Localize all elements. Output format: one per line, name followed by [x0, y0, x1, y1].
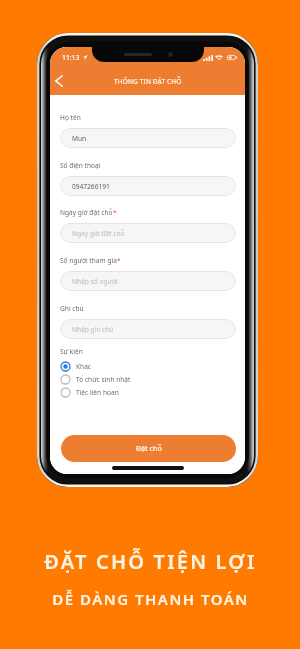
button[interactable]: Nhập số người: [60, 271, 236, 291]
staticText: Số điện thoại: [60, 161, 101, 170]
staticText: Số người tham gia: [60, 256, 117, 265]
staticText: THÔNG TIN ĐẶT CHỖ: [114, 77, 182, 86]
staticText: ĐẶT CHỖ TIỆN LỢI: [44, 548, 257, 575]
button[interactable]: Đặt chỗ: [61, 435, 236, 462]
staticText: Ngày giờ đặt chỗ: [60, 208, 113, 217]
staticText: Ghi chú: [60, 304, 84, 313]
staticText: DỄ DÀNG THANH TOÁN: [52, 589, 249, 609]
staticText: Nhập ghi chú: [72, 325, 114, 334]
staticText: *: [113, 208, 117, 217]
staticText: Mun: [72, 134, 87, 143]
button[interactable]: Mun: [60, 128, 236, 148]
button[interactable]: Back: [50, 70, 68, 92]
staticText: 0947266191: [72, 182, 110, 191]
staticText: *: [117, 256, 121, 265]
staticText: Tổ chức sinh nhật: [76, 375, 131, 384]
staticText: Họ tên: [60, 113, 81, 122]
button[interactable]: Tổ chức sinh nhật: [60, 373, 236, 386]
staticText: Sự kiện: [60, 347, 83, 356]
staticText: Tiệc liên hoan: [76, 388, 119, 397]
button[interactable]: Tiệc liên hoan: [60, 386, 236, 399]
button[interactable]: Ngày giờ đặt chỗ: [60, 223, 236, 243]
staticText: 11:13: [62, 53, 80, 62]
staticText: Nhập số người: [72, 277, 118, 286]
staticText: Khác: [76, 362, 92, 371]
button[interactable]: 0947266191: [60, 176, 236, 196]
staticText: Đặt chỗ: [136, 444, 162, 454]
button[interactable]: Nhập ghi chú: [60, 319, 236, 339]
staticText: Ngày giờ đặt chỗ: [72, 229, 125, 238]
button[interactable]: Khác: [60, 360, 236, 373]
